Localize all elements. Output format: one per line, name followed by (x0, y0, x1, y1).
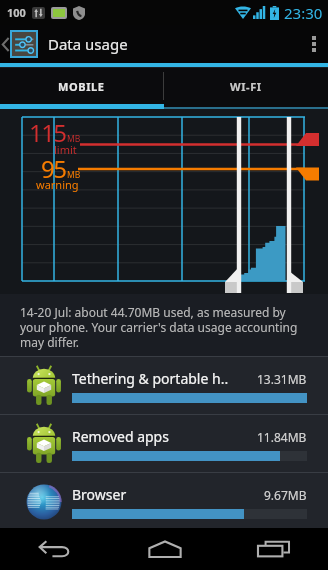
button[interactable]: MOBILE (0, 68, 163, 104)
staticText: Tethering & portable h.. (72, 369, 229, 388)
staticText: Browser (72, 485, 127, 504)
button[interactable]: Browser (0, 473, 328, 530)
button[interactable]: Removed apps (0, 415, 328, 472)
staticText: warning (36, 177, 79, 192)
staticText: Data usage (48, 34, 128, 54)
staticText: 13.31MB (257, 371, 307, 387)
staticText: limit (54, 142, 77, 157)
staticText: MOBILE (58, 79, 105, 94)
button[interactable]: Recent apps (219, 528, 328, 570)
staticText: MB (67, 169, 81, 181)
button[interactable]: Home (110, 528, 219, 570)
staticText: 11.84MB (257, 429, 307, 445)
staticText: MB (67, 133, 81, 145)
staticText: WI-FI (230, 79, 262, 94)
staticText: 115 (29, 116, 66, 149)
button[interactable]: More options (300, 25, 328, 63)
button[interactable]: Back (0, 528, 110, 570)
staticText: 95 (41, 152, 66, 185)
button[interactable]: Navigate up (0, 25, 40, 63)
button[interactable]: Tethering & portable h.. (0, 357, 328, 414)
staticText: Removed apps (72, 427, 169, 446)
staticText: 9.67MB (264, 487, 307, 503)
staticText: 23:30 (284, 3, 323, 23)
staticText: 100 (7, 5, 26, 20)
staticText: 14-20 Jul: about 44.70MB used, as measur… (20, 304, 306, 350)
button[interactable]: WI-FI (164, 68, 328, 104)
